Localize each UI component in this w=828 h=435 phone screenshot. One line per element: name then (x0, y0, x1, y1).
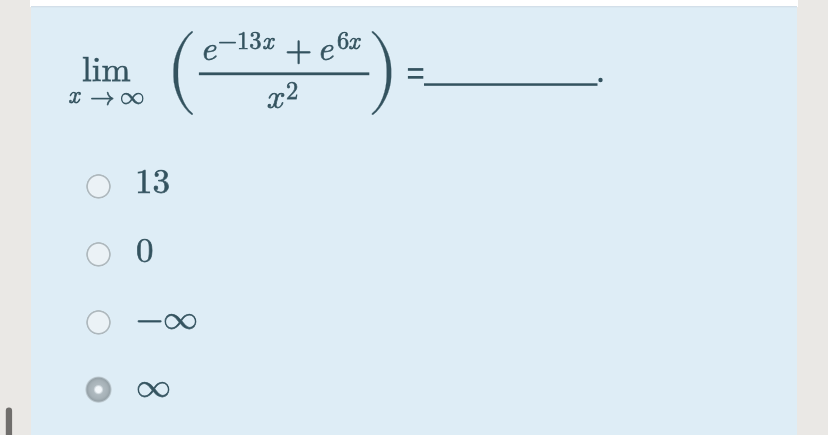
staticText: 0 (136, 223, 154, 273)
button[interactable]: minus infinity (78, 295, 778, 349)
staticText: lim (82, 42, 131, 92)
staticText: e (200, 21, 217, 71)
staticText: ( (165, 26, 198, 110)
staticText: → (90, 85, 115, 110)
staticText: ) (367, 26, 400, 110)
staticText: x (348, 21, 360, 56)
staticText: − (136, 302, 164, 337)
staticText: 13 (237, 21, 262, 56)
staticText: x (68, 75, 80, 110)
staticText: e (317, 21, 334, 71)
staticText: 6 (337, 21, 350, 56)
staticText: − (218, 29, 238, 54)
staticText: ∞ (120, 84, 145, 109)
staticText: + (285, 33, 313, 68)
staticText: lim (82, 42, 131, 92)
staticText: x (266, 69, 283, 119)
staticText: − (136, 302, 164, 337)
staticText: ( (165, 26, 198, 110)
staticText: x (262, 21, 274, 56)
staticText: 6 (337, 21, 350, 56)
staticText: x (68, 75, 80, 110)
staticText: → (90, 85, 115, 110)
staticText: ∞ (163, 301, 199, 336)
staticText: e (200, 21, 217, 71)
staticText: x (348, 21, 360, 56)
staticText: x (266, 69, 283, 119)
staticText: 13 (135, 154, 171, 204)
staticText: ∞ (136, 369, 172, 404)
staticText: ∞ (120, 84, 145, 109)
staticText: + (285, 33, 313, 68)
staticText: 13 (135, 154, 171, 204)
button[interactable]: 13 (78, 159, 778, 213)
button[interactable]: infinity (78, 363, 778, 417)
staticText: 2 (286, 71, 299, 106)
button[interactable]: 0 (78, 227, 778, 281)
staticText: ) (367, 26, 400, 110)
staticText: − (218, 29, 238, 54)
staticText: 13 (237, 21, 262, 56)
staticText: ∞ (136, 369, 172, 404)
staticText: 0 (136, 223, 154, 273)
staticText: x (262, 21, 274, 56)
staticText: e (317, 21, 334, 71)
staticText: ∞ (163, 301, 199, 336)
staticText: 2 (286, 71, 299, 106)
